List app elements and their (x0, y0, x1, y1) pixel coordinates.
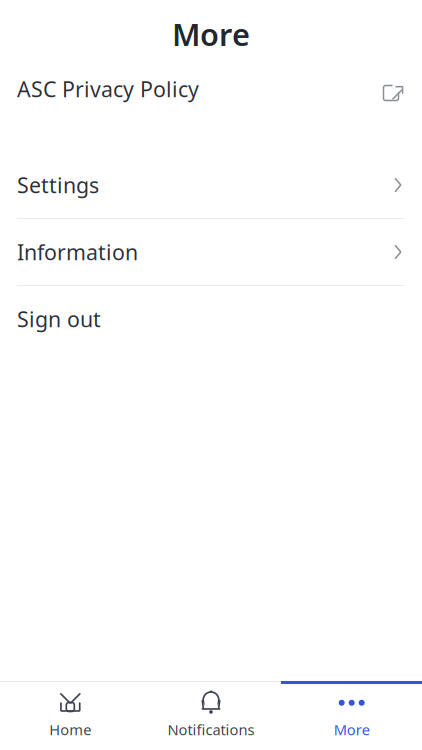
button[interactable]: Settings (0, 152, 422, 218)
button[interactable]: Notifications (141, 687, 281, 743)
button[interactable]: More (281, 687, 422, 743)
staticText: More (172, 14, 250, 54)
button[interactable]: Home (0, 687, 141, 743)
staticText: Notifications (167, 720, 254, 739)
staticText: Sign out (17, 305, 101, 333)
staticText: Settings (17, 171, 99, 199)
staticText: Information (17, 238, 138, 266)
staticText: Home (49, 720, 91, 739)
button[interactable]: Sign out (0, 286, 422, 352)
button[interactable]: ASC Privacy Policy (0, 68, 422, 110)
button[interactable]: Information (0, 219, 422, 285)
staticText: More (334, 720, 370, 739)
staticText: ASC Privacy Policy (17, 75, 199, 103)
